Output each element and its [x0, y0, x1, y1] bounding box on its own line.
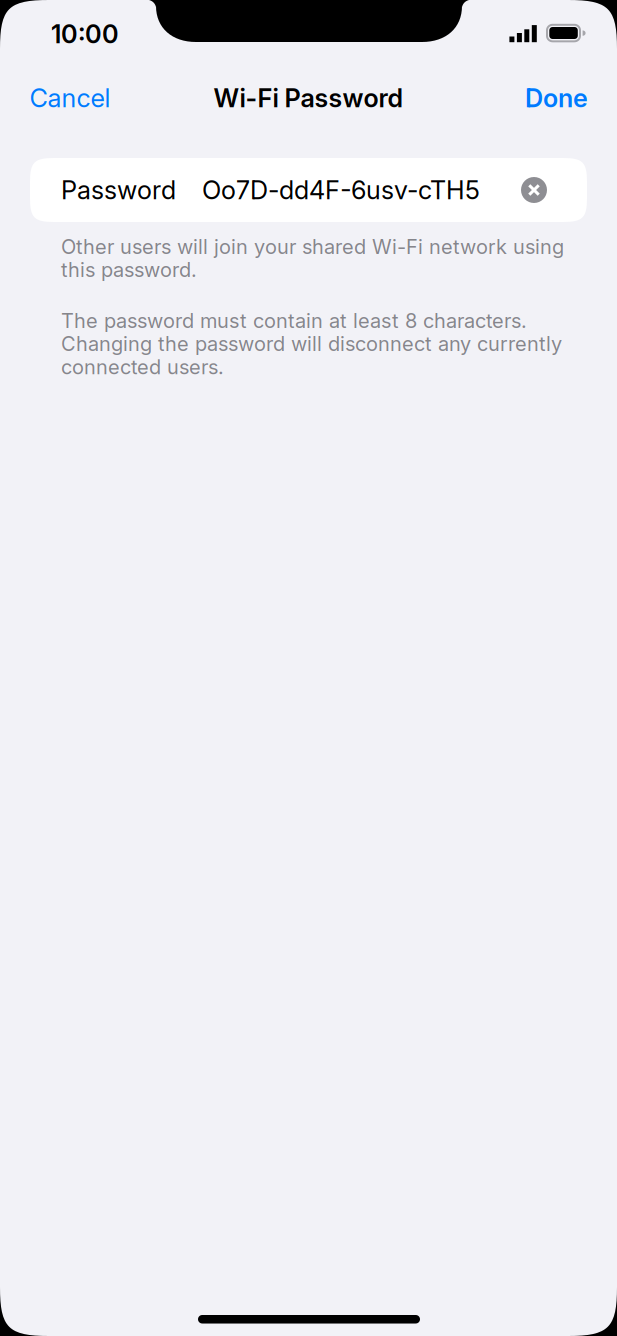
button[interactable]: Password	[30, 158, 587, 222]
staticText: Oo7D-dd4F-6usv-cTH5	[202, 175, 480, 205]
staticText: Other users will join your shared Wi-Fi …	[61, 235, 564, 281]
button[interactable]: Cancel	[29, 83, 110, 113]
button[interactable]: Clear text	[521, 177, 547, 203]
staticText: Password	[61, 175, 176, 205]
staticText: Done	[525, 83, 588, 113]
staticText: The password must contain at least 8 cha…	[61, 309, 562, 379]
staticText: Cancel	[29, 83, 110, 113]
staticText: Wi-Fi Password	[213, 83, 403, 113]
button[interactable]: Done	[525, 83, 588, 113]
staticText: 10:00	[51, 19, 119, 49]
